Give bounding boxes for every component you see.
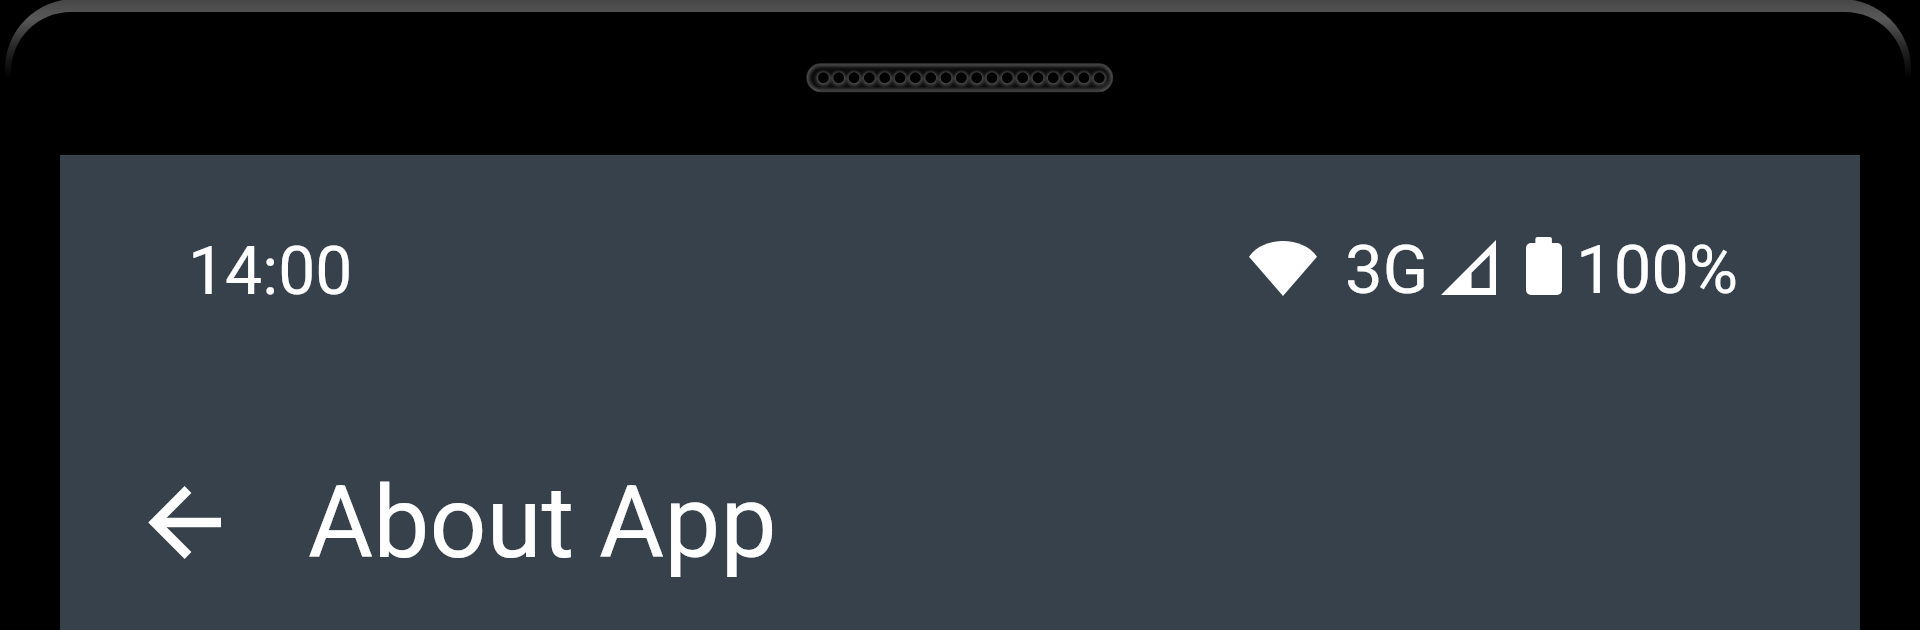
staticText: About App bbox=[308, 464, 777, 581]
other: Wi-Fi connected bbox=[1249, 239, 1317, 296]
button[interactable]: Navigate up bbox=[130, 470, 235, 575]
other: Battery full bbox=[1526, 237, 1562, 295]
staticText: 100% bbox=[1576, 231, 1739, 310]
staticText: 14:00 bbox=[188, 233, 353, 310]
staticText: 3G bbox=[1345, 231, 1429, 310]
other: Mobile signal bbox=[1441, 240, 1496, 295]
